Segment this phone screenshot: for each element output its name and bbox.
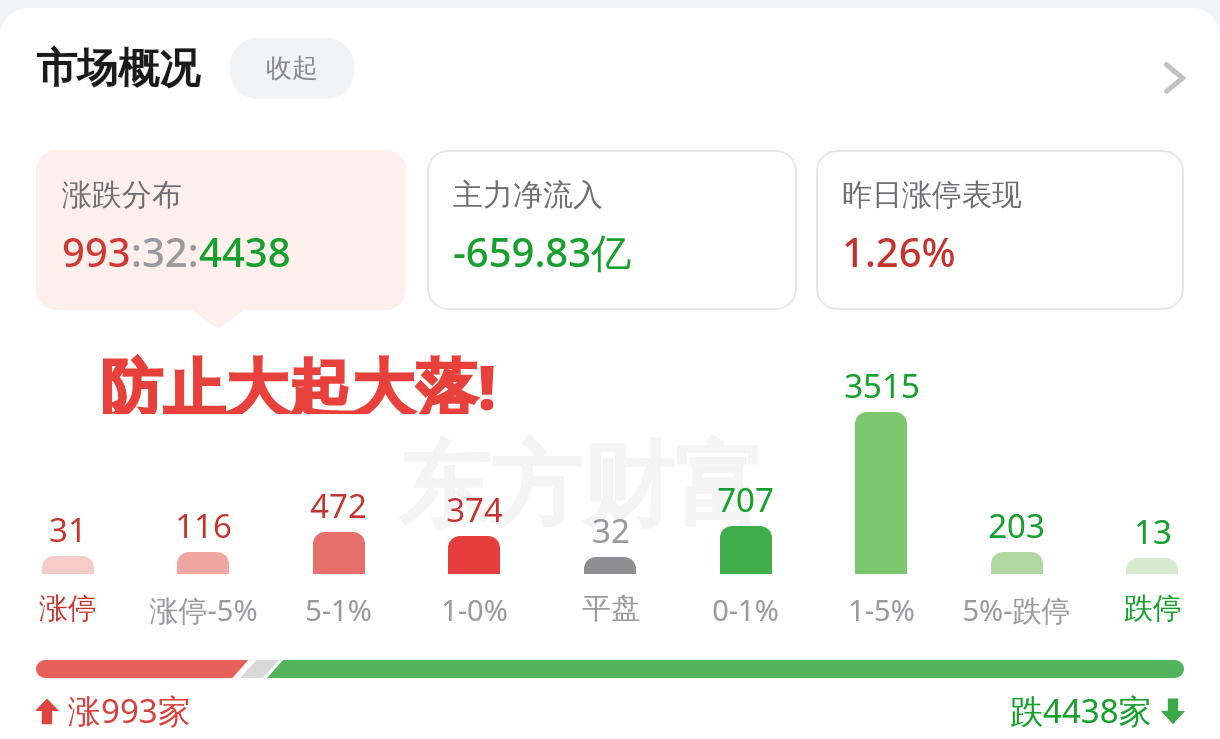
staticText: 昨日涨停表现: [842, 176, 1022, 214]
button[interactable]: 收起: [230, 38, 354, 99]
staticText: 涨停: [39, 590, 97, 627]
staticText: 跌4438家: [1010, 688, 1152, 733]
staticText: 0-1%: [712, 590, 779, 629]
staticText: 防止大起大落!: [100, 344, 497, 414]
staticText: 涨993家: [68, 688, 191, 733]
button[interactable]: More: [1152, 54, 1200, 102]
button[interactable]: 1-0% 374: [448, 536, 500, 574]
staticText: -659.83亿: [453, 224, 632, 279]
button[interactable]: 涨停 31: [42, 556, 94, 574]
staticText: 涨停-5%: [149, 590, 258, 630]
staticText: 993: [62, 224, 131, 278]
button[interactable]: 0-1% 707: [720, 526, 772, 574]
button[interactable]: 跌停 13: [1126, 558, 1178, 574]
staticText: 1-0%: [441, 590, 508, 629]
button[interactable]: 涨跌分布: [36, 150, 406, 310]
staticText: 1.26%: [842, 224, 956, 278]
staticText: 472: [310, 483, 367, 528]
staticText: 116: [175, 503, 232, 548]
staticText: 707: [717, 477, 774, 522]
button[interactable]: 涨993家: [34, 688, 191, 733]
button[interactable]: [36, 660, 1184, 678]
staticText: 203: [988, 503, 1045, 548]
staticText: 收起: [266, 52, 318, 85]
staticText: 主力净流入: [453, 176, 603, 214]
staticText: 32: [592, 508, 630, 553]
button[interactable]: 主力净流入: [427, 150, 797, 310]
button[interactable]: 5-1% 472: [313, 532, 365, 574]
staticText: :32:: [131, 224, 199, 278]
button[interactable]: 5%-跌停 203: [991, 552, 1043, 574]
button[interactable]: 昨日涨停表现: [816, 150, 1184, 310]
staticText: 1-5%: [848, 590, 915, 629]
staticText: 374: [446, 487, 503, 532]
staticText: 平盘: [582, 590, 640, 627]
button[interactable]: 跌4438家: [1010, 688, 1186, 733]
button[interactable]: 涨停-5% 116: [177, 552, 229, 574]
staticText: 市场概况: [36, 43, 200, 95]
staticText: 13: [1134, 509, 1172, 554]
staticText: 东方财富: [398, 428, 766, 544]
staticText: 5-1%: [305, 590, 372, 629]
staticText: 跌停: [1124, 590, 1182, 627]
staticText: 31: [49, 507, 87, 552]
staticText: 涨跌分布: [62, 176, 182, 214]
staticText: 5%-跌停: [962, 590, 1071, 630]
staticText: 3515: [844, 363, 920, 408]
staticText: 4438: [199, 224, 291, 278]
button[interactable]: 1-5% 3515: [855, 412, 907, 574]
button[interactable]: 平盘 32: [584, 557, 636, 574]
